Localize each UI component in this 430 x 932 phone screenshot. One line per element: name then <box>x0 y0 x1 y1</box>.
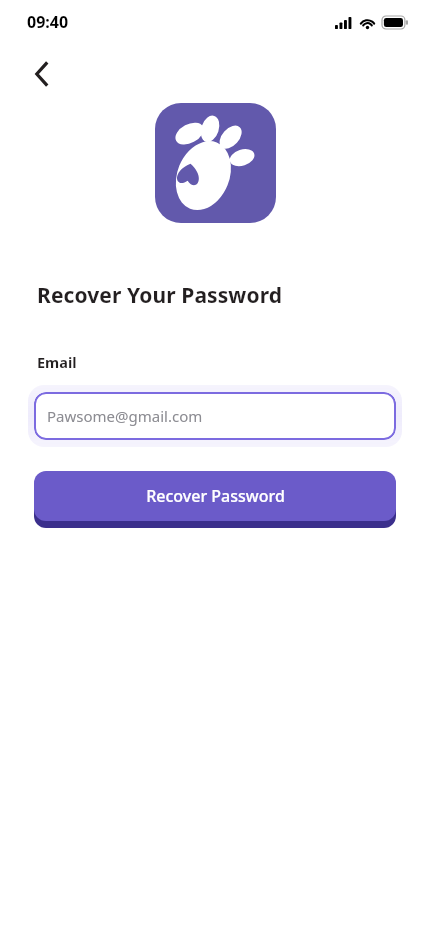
button[interactable]: Recover Password <box>34 471 396 528</box>
staticText: Recover Your Password <box>37 281 283 310</box>
staticText: Email <box>37 352 77 372</box>
button[interactable]: Pawsome@gmail.com <box>34 392 396 440</box>
staticText: Pawsome@gmail.com <box>47 406 203 426</box>
staticText: Recover Password <box>146 485 285 507</box>
button[interactable]: Back <box>20 52 64 96</box>
staticText: 09:40 <box>27 11 69 33</box>
